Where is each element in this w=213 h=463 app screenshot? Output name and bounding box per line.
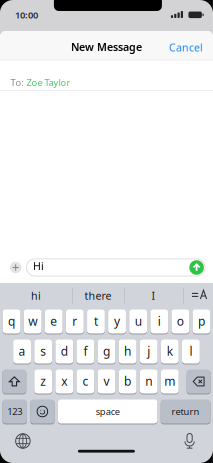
staticText: there <box>84 288 111 303</box>
button[interactable]: t <box>87 309 105 333</box>
staticText: v <box>103 373 109 389</box>
button[interactable]: l <box>182 339 200 363</box>
button[interactable]: q <box>3 309 20 333</box>
staticText: I <box>151 288 155 303</box>
staticText: space <box>96 405 120 418</box>
button[interactable]: Delete <box>187 369 211 393</box>
staticText: 123 <box>7 405 22 418</box>
staticText: i <box>158 313 161 329</box>
staticText: b <box>124 373 131 389</box>
button[interactable]: Cancel <box>169 38 213 52</box>
staticText: y <box>114 313 120 329</box>
button[interactable]: i <box>150 309 168 333</box>
button[interactable]: r <box>66 309 84 333</box>
button[interactable]: j <box>140 339 158 363</box>
staticText: o <box>177 313 184 329</box>
staticText: f <box>83 343 87 359</box>
staticText: x <box>61 373 67 389</box>
staticText: n <box>145 373 152 389</box>
staticText: 10:00 <box>15 9 38 21</box>
button[interactable]: Next keyboard <box>15 433 30 448</box>
staticText: Zoe Taylor <box>26 76 70 88</box>
button[interactable]: n <box>140 369 158 393</box>
button[interactable]: g <box>98 339 115 363</box>
staticText: To: <box>10 76 24 88</box>
button[interactable]: u <box>129 309 147 333</box>
button[interactable]: hi <box>0 283 72 308</box>
button[interactable]: a <box>13 339 31 363</box>
staticText: t <box>94 313 98 329</box>
staticText: k <box>167 343 173 359</box>
staticText: j <box>147 343 150 359</box>
button[interactable]: return <box>161 399 210 423</box>
button[interactable]: b <box>119 369 136 393</box>
button[interactable]: Apps <box>10 262 21 273</box>
staticText: g <box>103 343 110 359</box>
button[interactable]: m <box>161 369 179 393</box>
staticText: z <box>40 373 46 389</box>
button[interactable]: k <box>161 339 179 363</box>
button[interactable]: z <box>34 369 52 393</box>
staticText: d <box>61 343 68 359</box>
button[interactable]: Dictate <box>183 433 197 449</box>
button[interactable]: there <box>72 283 124 308</box>
staticText: w <box>28 313 37 329</box>
staticText: r <box>72 313 77 329</box>
staticText: l <box>189 343 192 359</box>
staticText: return <box>172 405 200 418</box>
button[interactable]: x <box>55 369 73 393</box>
button[interactable]: e <box>45 309 63 333</box>
staticText: a <box>19 343 26 359</box>
button[interactable]: c <box>76 369 94 393</box>
button[interactable]: Send <box>189 260 204 275</box>
button[interactable]: To: <box>0 60 213 90</box>
button[interactable]: o <box>171 309 189 333</box>
button[interactable]: v <box>98 369 115 393</box>
staticText: m <box>164 373 175 389</box>
button[interactable]: Shift <box>2 369 26 393</box>
button[interactable]: d <box>55 339 73 363</box>
staticText: p <box>198 313 205 329</box>
staticText: q <box>8 313 15 329</box>
button[interactable]: Autofill <box>188 283 213 308</box>
staticText: h <box>124 343 131 359</box>
button[interactable]: Emoji <box>30 399 55 423</box>
button[interactable]: I <box>124 283 183 308</box>
button[interactable]: y <box>108 309 126 333</box>
staticText: c <box>82 373 88 389</box>
button[interactable]: f <box>76 339 94 363</box>
staticText: e <box>50 313 57 329</box>
button[interactable]: w <box>24 309 41 333</box>
staticText: Cancel <box>169 40 203 54</box>
staticText: u <box>135 313 142 329</box>
staticText: s <box>40 343 46 359</box>
button[interactable]: p <box>192 309 210 333</box>
staticText: New Message <box>71 40 142 54</box>
button[interactable]: space <box>58 399 157 423</box>
button[interactable]: h <box>119 339 136 363</box>
staticText: hi <box>31 288 41 303</box>
button[interactable]: s <box>34 339 52 363</box>
staticText: Hi <box>33 259 44 273</box>
button[interactable]: 123 <box>2 399 27 423</box>
